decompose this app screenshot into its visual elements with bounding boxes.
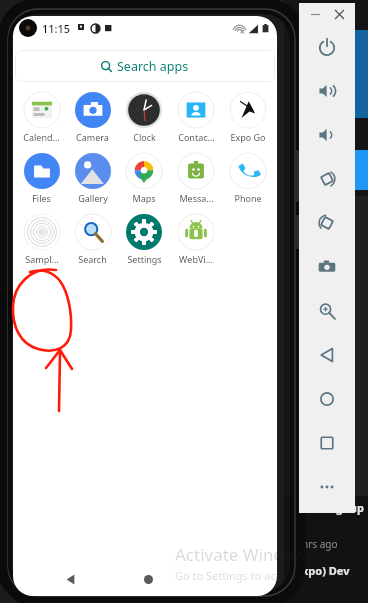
button[interactable]: Search apps (15, 50, 275, 82)
button[interactable]: Back (299, 333, 355, 377)
staticText: xpo) Dev (302, 563, 350, 578)
button[interactable]: Volume down (299, 113, 355, 157)
button[interactable]: Messa... (170, 153, 222, 204)
staticText: Settings (127, 253, 162, 265)
button[interactable]: Files (16, 153, 67, 204)
button[interactable]: Gallery (67, 153, 118, 204)
staticText: Maps (132, 192, 156, 204)
button[interactable]: Search (67, 214, 118, 265)
staticText: Calend... (23, 131, 60, 143)
staticText: Sampl... (25, 253, 59, 265)
button[interactable]: Zoom (299, 289, 355, 333)
button[interactable]: Take screenshot (299, 245, 355, 289)
button[interactable]: Home (299, 377, 355, 421)
staticText: Activate Windows (175, 543, 316, 566)
staticText: Gallery (78, 192, 108, 204)
button[interactable]: Maps (118, 153, 170, 204)
button[interactable]: Contac... (170, 92, 222, 143)
staticText: hrs ago (302, 537, 338, 551)
staticText: Files (32, 192, 51, 204)
button[interactable]: Overview (299, 421, 355, 465)
staticText: in & Signup (302, 500, 364, 515)
button[interactable]: Volume up (299, 69, 355, 113)
button[interactable]: Phone (222, 153, 274, 204)
button[interactable]: More (299, 465, 355, 509)
staticText: Clock (133, 131, 156, 143)
staticText: Search apps (117, 58, 189, 75)
button[interactable]: Close (330, 5, 348, 23)
button[interactable]: Calend... (16, 92, 67, 143)
button[interactable]: Camera (67, 92, 118, 143)
button[interactable]: Power (299, 25, 355, 69)
button[interactable]: Sampl... (16, 214, 67, 265)
staticText: WebVi... (179, 253, 213, 265)
button[interactable]: Settings (118, 214, 170, 265)
button[interactable]: Back (55, 564, 85, 594)
staticText: Expo Go (230, 131, 266, 143)
staticText: Camera (76, 131, 109, 143)
staticText: Contac... (178, 131, 215, 143)
staticText: Go to Settings to activate Windows. (175, 568, 358, 583)
button[interactable]: Rotate right (299, 201, 355, 245)
button[interactable]: Clock (118, 92, 170, 143)
button[interactable]: Home (133, 564, 163, 594)
button[interactable]: Minimize (306, 5, 324, 23)
staticText: Messa... (179, 192, 214, 204)
staticText: Search (78, 253, 107, 265)
button[interactable]: WebVi... (170, 214, 222, 265)
staticText: 11:15 (42, 21, 71, 36)
button[interactable]: Expo Go (222, 92, 274, 143)
staticText: Phone (234, 192, 262, 204)
button[interactable]: Rotate left (299, 157, 355, 201)
